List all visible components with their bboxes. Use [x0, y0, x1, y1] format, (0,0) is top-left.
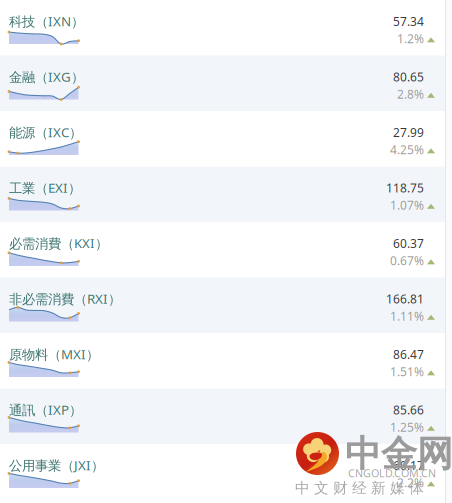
staticText: CNGOLD.COM.CN: [348, 466, 436, 480]
button[interactable]: 科技（IXN）: [0, 0, 445, 55]
staticText: 通訊（IXP）: [9, 401, 82, 418]
staticText: 166.81: [386, 291, 424, 307]
staticText: 1.25%: [390, 419, 424, 435]
staticText: 科技（IXN）: [9, 12, 84, 30]
staticText: 118.75: [386, 180, 424, 196]
staticText: 0.67%: [390, 253, 424, 268]
button[interactable]: 原物料（MXI）: [0, 333, 445, 388]
button[interactable]: 通訊（IXP）: [0, 388, 445, 444]
staticText: 80.65: [393, 69, 424, 85]
staticText: 57.34: [393, 13, 424, 29]
staticText: 60.37: [393, 235, 424, 251]
staticText: 85.66: [393, 402, 424, 418]
staticText: 1.11%: [390, 308, 424, 324]
staticText: 1.07%: [390, 197, 424, 213]
staticText: 86.47: [393, 346, 424, 362]
staticText: 27.99: [393, 124, 424, 140]
staticText: 中 文 财 经 新 媒 体: [295, 479, 424, 497]
staticText: 必需消費（KXI）: [9, 234, 108, 252]
staticText: 1.51%: [390, 364, 424, 379]
staticText: 工業（EXI）: [9, 179, 81, 196]
staticText: 2.8%: [397, 86, 424, 102]
button[interactable]: 公用事業（JXI）: [0, 444, 445, 499]
staticText: 非必需消費（RXI）: [9, 290, 121, 307]
staticText: 能源（IXC）: [9, 123, 82, 141]
button[interactable]: 非必需消費（RXI）: [0, 277, 445, 333]
staticText: 中金网: [345, 432, 452, 476]
staticText: 原物料（MXI）: [9, 345, 99, 363]
staticText: 2.2%: [397, 475, 424, 490]
staticText: 公用事業（JXI）: [9, 456, 104, 474]
button[interactable]: 能源（IXC）: [0, 111, 445, 166]
button[interactable]: 金融（IXG）: [0, 55, 445, 111]
staticText: 金融（IXG）: [9, 68, 84, 85]
staticText: 1.2%: [397, 31, 424, 46]
button[interactable]: 必需消費（KXI）: [0, 222, 445, 277]
button[interactable]: 工業（EXI）: [0, 166, 445, 222]
staticText: 4.25%: [390, 142, 424, 157]
staticText: 60.17: [393, 457, 424, 473]
